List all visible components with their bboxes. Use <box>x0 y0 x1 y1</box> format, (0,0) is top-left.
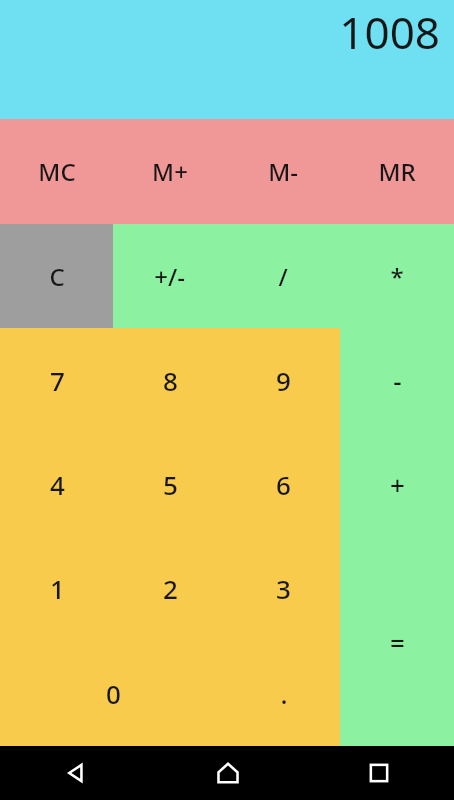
staticText: C <box>49 260 65 293</box>
staticText: 0 <box>106 676 121 711</box>
button[interactable]: 0 <box>0 641 227 746</box>
button[interactable]: M- <box>226 119 340 224</box>
staticText: * <box>390 260 404 293</box>
staticText: 7 <box>50 363 65 398</box>
staticText: = <box>390 624 405 659</box>
staticText: . <box>280 676 288 711</box>
button[interactable]: * <box>340 224 454 328</box>
button[interactable]: Recent apps <box>303 746 454 800</box>
staticText: MR <box>378 155 416 188</box>
button[interactable]: 9 <box>227 328 340 432</box>
staticText: 8 <box>163 363 178 398</box>
button[interactable]: 5 <box>114 432 227 536</box>
button[interactable]: C <box>0 224 113 328</box>
staticText: 5 <box>163 467 178 502</box>
button[interactable]: 3 <box>227 536 340 641</box>
button[interactable]: Home <box>152 746 303 800</box>
button[interactable]: = <box>340 537 454 746</box>
staticText: MC <box>38 155 76 188</box>
button[interactable]: MC <box>0 119 113 224</box>
button[interactable]: M+ <box>113 119 226 224</box>
button[interactable]: 4 <box>0 432 114 536</box>
button[interactable]: 1008 <box>0 0 454 119</box>
staticText: 1008 <box>339 2 440 62</box>
button[interactable]: + <box>340 432 454 537</box>
staticText: + <box>390 467 405 502</box>
staticText: / <box>278 260 288 293</box>
button[interactable]: 2 <box>114 536 227 641</box>
staticText: 2 <box>163 571 178 606</box>
staticText: 6 <box>276 467 291 502</box>
staticText: +/- <box>154 260 185 293</box>
button[interactable]: . <box>227 641 340 746</box>
button[interactable]: - <box>340 328 454 432</box>
button[interactable]: 8 <box>114 328 227 432</box>
staticText: M+ <box>152 155 188 188</box>
button[interactable]: 1 <box>0 536 114 641</box>
staticText: 4 <box>50 467 65 502</box>
button[interactable]: / <box>226 224 340 328</box>
button[interactable]: 7 <box>0 328 114 432</box>
staticText: 1 <box>50 571 65 606</box>
staticText: - <box>393 363 402 398</box>
button[interactable]: Back <box>0 746 152 800</box>
button[interactable]: 6 <box>227 432 340 536</box>
staticText: 9 <box>276 363 291 398</box>
staticText: M- <box>268 155 298 188</box>
button[interactable]: +/- <box>113 224 226 328</box>
button[interactable]: MR <box>340 119 454 224</box>
staticText: 3 <box>276 571 291 606</box>
